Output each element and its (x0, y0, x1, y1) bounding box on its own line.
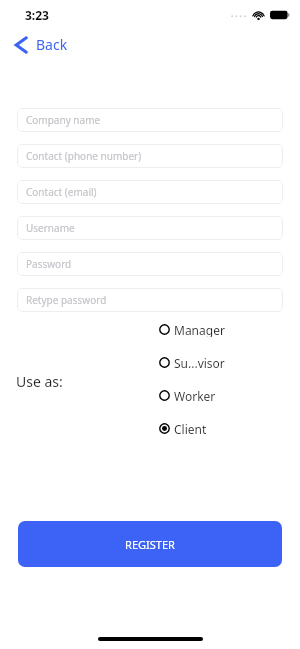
staticText: Back (36, 35, 68, 54)
staticText: Username (26, 221, 75, 235)
button[interactable]: Su...visor (158, 355, 226, 370)
button[interactable]: Password (17, 252, 283, 276)
staticText: REGISTER (125, 537, 175, 552)
staticText: Contact (email) (26, 185, 97, 199)
button[interactable]: Manager (158, 322, 226, 337)
staticText: Use as: (16, 372, 63, 391)
staticText: Su...visor (174, 355, 225, 370)
button[interactable]: Back (10, 32, 72, 57)
staticText: Company name (26, 113, 101, 127)
staticText: Password (26, 257, 72, 271)
button[interactable]: REGISTER (18, 521, 282, 567)
button[interactable]: Retype password (17, 288, 283, 312)
staticText: Retype password (26, 293, 107, 307)
button[interactable]: Company name (17, 108, 283, 132)
button[interactable]: Client (158, 421, 208, 436)
staticText: Client (174, 421, 207, 436)
staticText: 3:23 (25, 7, 49, 23)
button[interactable]: Username (17, 216, 283, 240)
button[interactable]: Contact (email) (17, 180, 283, 204)
staticText: Contact (phone number) (26, 149, 142, 163)
staticText: Worker (174, 388, 216, 403)
button[interactable]: Worker (158, 388, 217, 403)
staticText: Manager (174, 322, 225, 337)
button[interactable]: Contact (phone number) (17, 144, 283, 168)
